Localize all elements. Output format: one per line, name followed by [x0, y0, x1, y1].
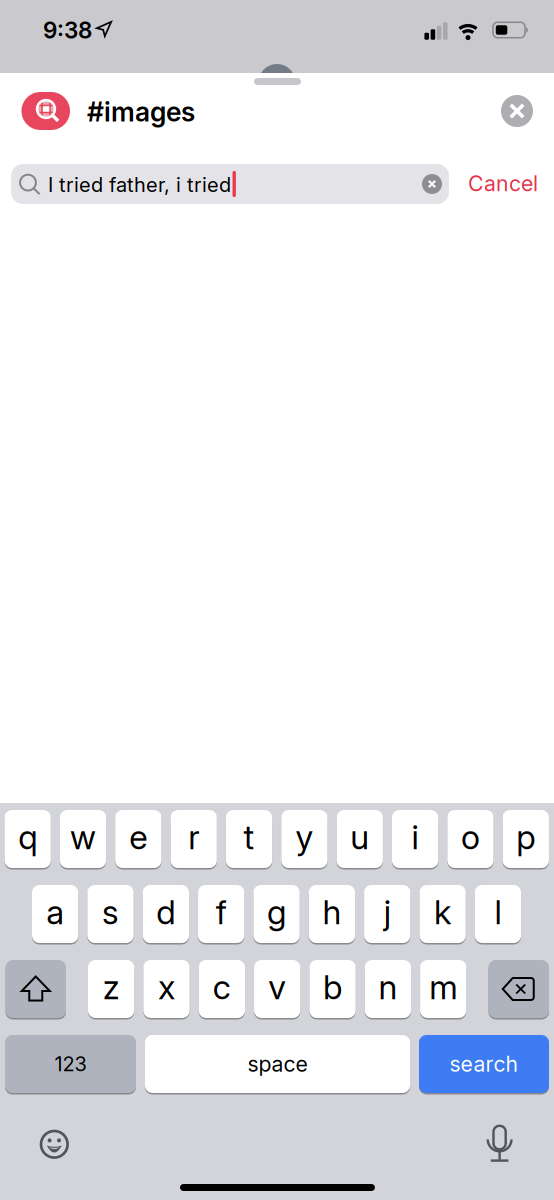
button[interactable]: x	[143, 960, 190, 1018]
button[interactable]: s	[87, 885, 134, 943]
button[interactable]: z	[88, 960, 134, 1018]
staticText: #images	[87, 96, 195, 127]
staticText: n	[378, 967, 397, 1007]
button[interactable]: t	[226, 810, 272, 868]
staticText: i	[412, 817, 419, 857]
staticText: c	[213, 967, 231, 1007]
staticText: s	[102, 892, 119, 932]
staticText: q	[18, 817, 37, 857]
button[interactable]: d	[143, 885, 189, 943]
staticText: m	[429, 967, 457, 1007]
button[interactable]: Emoji	[39, 1129, 70, 1160]
staticText: a	[46, 892, 64, 932]
button[interactable]: Shift	[5, 960, 66, 1018]
button[interactable]: b	[309, 960, 356, 1018]
button[interactable]: n	[365, 960, 411, 1018]
staticText: t	[244, 817, 255, 857]
button[interactable]: a	[32, 885, 78, 943]
staticText: 123	[54, 1052, 86, 1076]
button[interactable]: f	[198, 885, 244, 943]
button[interactable]: m	[420, 960, 466, 1018]
button[interactable]: Cancel	[468, 171, 538, 196]
button[interactable]: h	[309, 885, 355, 943]
staticText: Cancel	[468, 171, 538, 196]
staticText: p	[516, 817, 535, 857]
staticText: z	[103, 967, 120, 1007]
staticText: x	[158, 967, 175, 1007]
staticText: h	[322, 892, 341, 932]
staticText: space	[247, 1051, 307, 1077]
button[interactable]: r	[171, 810, 217, 868]
button[interactable]: i	[392, 810, 438, 868]
button[interactable]: v	[254, 960, 300, 1018]
staticText: 9:38	[43, 17, 92, 44]
staticText: b	[323, 967, 342, 1007]
button[interactable]: e	[115, 810, 161, 868]
staticText: l	[494, 892, 501, 932]
staticText: y	[295, 817, 313, 857]
button[interactable]: 123	[5, 1035, 136, 1093]
button[interactable]: Close	[501, 95, 533, 127]
staticText: v	[268, 967, 286, 1007]
staticText: search	[449, 1051, 518, 1077]
staticText: g	[267, 892, 286, 932]
button[interactable]: p	[503, 810, 549, 868]
button[interactable]: l	[475, 885, 521, 943]
staticText: f	[216, 892, 227, 932]
button[interactable]: u	[337, 810, 383, 868]
staticText: e	[129, 817, 147, 857]
button[interactable]: j	[364, 885, 410, 943]
button[interactable]: space	[145, 1035, 410, 1093]
button[interactable]: k	[419, 885, 466, 943]
button[interactable]: q	[4, 810, 51, 868]
button[interactable]: y	[281, 810, 327, 868]
button[interactable]: Dictate	[487, 1125, 512, 1163]
staticText: I tried father, i tried	[48, 173, 231, 197]
button[interactable]: I tried father, i tried	[11, 164, 449, 204]
button[interactable]: Clear text	[422, 174, 442, 194]
staticText: w	[70, 817, 96, 857]
staticText: k	[434, 892, 451, 932]
staticText: r	[188, 817, 199, 857]
button[interactable]: search	[419, 1035, 549, 1093]
button[interactable]: Delete	[488, 960, 549, 1018]
staticText: u	[350, 817, 369, 857]
button[interactable]: g	[253, 885, 300, 943]
staticText: j	[384, 892, 391, 932]
staticText: d	[156, 892, 175, 932]
button[interactable]: o	[447, 810, 494, 868]
staticText: o	[461, 817, 480, 857]
button[interactable]: w	[60, 810, 106, 868]
button[interactable]: c	[199, 960, 245, 1018]
